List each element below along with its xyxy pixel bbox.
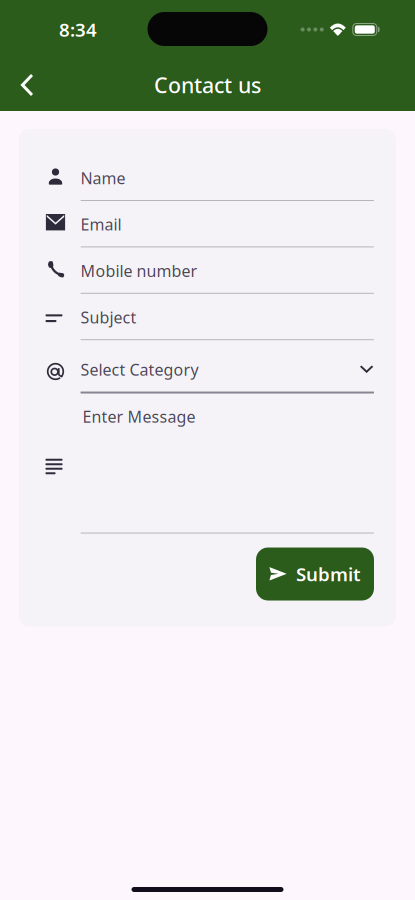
staticText: Email xyxy=(80,214,121,235)
button[interactable]: Back xyxy=(5,63,49,107)
staticText: Enter Message xyxy=(82,406,195,427)
button[interactable]: Submit xyxy=(256,547,374,600)
staticText: Contact us xyxy=(154,71,261,99)
staticText: Submit xyxy=(296,562,361,586)
staticText: Subject xyxy=(80,307,136,328)
staticText: 8:34 xyxy=(59,17,97,42)
staticText: Name xyxy=(80,167,125,189)
staticText: Mobile number xyxy=(80,260,197,281)
staticText: Select Category xyxy=(80,359,198,380)
